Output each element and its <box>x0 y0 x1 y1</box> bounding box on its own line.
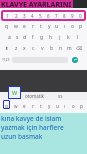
staticText: r <box>32 103 34 109</box>
staticText: j <box>59 34 61 41</box>
button[interactable]: KLAVYE AYARLARINI DEĞİŞTİRME <box>0 0 73 8</box>
staticText: p <box>79 23 83 30</box>
staticText: z <box>15 45 18 52</box>
button[interactable]: 4 <box>28 11 36 20</box>
button[interactable]: s <box>13 32 21 42</box>
button[interactable]: w <box>11 21 20 31</box>
staticText: vs <box>58 93 63 99</box>
button[interactable]: z <box>12 43 20 53</box>
staticText: u <box>55 23 59 30</box>
staticText: KLAVYE AYARLARINI DEĞİŞTİRME <box>1 0 73 8</box>
button[interactable]: u <box>53 102 61 110</box>
button[interactable]: w <box>11 102 20 110</box>
button[interactable]: 9 <box>68 11 76 20</box>
button[interactable]: r <box>29 102 37 110</box>
staticText: ↵ <box>74 58 77 62</box>
button[interactable]: Selected key w <box>3 100 10 109</box>
staticText: y <box>48 103 51 109</box>
staticText: u <box>56 103 59 109</box>
button[interactable]: 6 <box>44 11 52 20</box>
staticText: uzun basmak <box>1 132 43 141</box>
button[interactable]: j <box>55 32 64 42</box>
staticText: t <box>40 23 42 30</box>
button[interactable]: Backspace <box>74 43 85 53</box>
staticText: p <box>80 103 83 109</box>
button[interactable]: a <box>5 32 13 42</box>
button[interactable]: f <box>29 32 37 42</box>
staticText: ı <box>64 103 66 109</box>
staticText: 1 <box>6 13 9 19</box>
button[interactable]: q <box>2 21 11 31</box>
button[interactable]: 2 <box>12 11 20 20</box>
staticText: ⌫ <box>76 46 83 51</box>
staticText: c <box>32 45 35 52</box>
staticText: 4 <box>31 13 34 19</box>
button[interactable]: 8 <box>60 11 68 20</box>
staticText: v <box>41 45 44 52</box>
staticText: e <box>23 23 26 30</box>
button[interactable]: 1 <box>3 11 12 20</box>
staticText: b <box>50 45 54 52</box>
staticText: o <box>71 23 75 30</box>
button[interactable]: g <box>37 32 46 42</box>
button[interactable]: t <box>37 21 45 31</box>
button[interactable]: u <box>53 21 61 31</box>
button[interactable]: h <box>46 32 55 42</box>
button[interactable]: m <box>65 43 74 53</box>
button[interactable]: r <box>29 21 37 31</box>
button[interactable]: 7 <box>52 11 60 20</box>
button[interactable]: Shift <box>2 43 12 53</box>
staticText: 9 <box>71 13 74 19</box>
button[interactable]: p <box>77 102 85 110</box>
staticText: w <box>14 103 18 109</box>
staticText: k <box>67 34 70 41</box>
button[interactable]: 0 <box>76 11 84 20</box>
staticText: d <box>23 34 27 41</box>
staticText: l <box>77 34 79 41</box>
button[interactable]: p <box>77 21 85 31</box>
button[interactable]: e <box>20 102 29 110</box>
button[interactable]: k <box>64 32 73 42</box>
staticText: w <box>14 23 18 30</box>
staticText: t <box>40 103 42 109</box>
staticText: 5 <box>39 13 42 19</box>
staticText: n <box>59 45 63 52</box>
button[interactable]: e <box>20 21 29 31</box>
staticText: ?123 <box>2 57 10 62</box>
button[interactable]: c <box>29 43 38 53</box>
staticText: otomatik <box>25 93 44 99</box>
button[interactable]: y <box>45 102 53 110</box>
staticText: ı <box>64 23 66 30</box>
staticText: y <box>48 23 51 30</box>
staticText: 8 <box>63 13 66 19</box>
button[interactable]: l <box>73 32 82 42</box>
button[interactable]: 3 <box>20 11 28 20</box>
button[interactable]: 5 <box>36 11 44 20</box>
button[interactable]: v <box>38 43 47 53</box>
button[interactable]: o <box>69 102 77 110</box>
button[interactable]: ı <box>61 21 69 31</box>
staticText: w <box>12 88 18 97</box>
button[interactable]: Key preview <box>9 87 20 98</box>
button[interactable]: ?123 <box>0 55 11 64</box>
staticText: h <box>49 34 53 41</box>
staticText: e <box>23 103 26 109</box>
staticText: q <box>5 103 8 109</box>
staticText: f <box>32 34 34 41</box>
staticText: yazmak için harflere <box>1 123 64 132</box>
staticText: 3 <box>23 13 26 19</box>
button[interactable]: Enter <box>72 57 78 63</box>
button[interactable]: q <box>2 102 11 110</box>
button[interactable]: t <box>37 102 45 110</box>
button[interactable]: x <box>20 43 29 53</box>
button[interactable]: d <box>21 32 29 42</box>
button[interactable]: y <box>45 21 53 31</box>
button[interactable]: n <box>56 43 65 53</box>
button[interactable]: ı <box>61 102 69 110</box>
staticText: x <box>23 45 26 52</box>
button[interactable]: o <box>69 21 77 31</box>
button[interactable]: b <box>47 43 56 53</box>
staticText: 0 <box>79 13 82 19</box>
staticText: 2 <box>15 13 18 19</box>
